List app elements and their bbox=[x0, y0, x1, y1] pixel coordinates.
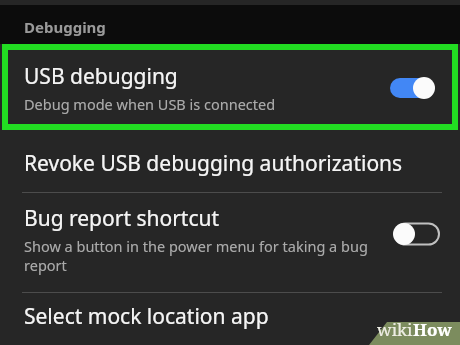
staticText: Debugging bbox=[24, 17, 106, 37]
button[interactable]: Revoke USB debugging authorizations bbox=[0, 134, 460, 192]
staticText: Select mock location app bbox=[24, 302, 269, 331]
button[interactable]: Bug report shortcut, off bbox=[393, 219, 443, 249]
staticText: Show a button in the power menu for taki… bbox=[24, 236, 383, 275]
staticText: wiki bbox=[377, 318, 413, 341]
staticText: USB debugging bbox=[24, 62, 178, 91]
staticText: Revoke USB debugging authorizations bbox=[24, 149, 403, 178]
button[interactable]: USB debugging bbox=[0, 50, 460, 125]
button[interactable]: Bug report shortcut bbox=[0, 194, 460, 291]
button[interactable]: USB debugging, on bbox=[390, 72, 434, 104]
button[interactable]: Select mock location app bbox=[0, 294, 460, 345]
staticText: Bug report shortcut bbox=[24, 204, 220, 233]
staticText: How bbox=[413, 318, 452, 341]
staticText: Debug mode when USB is connected bbox=[24, 94, 276, 114]
